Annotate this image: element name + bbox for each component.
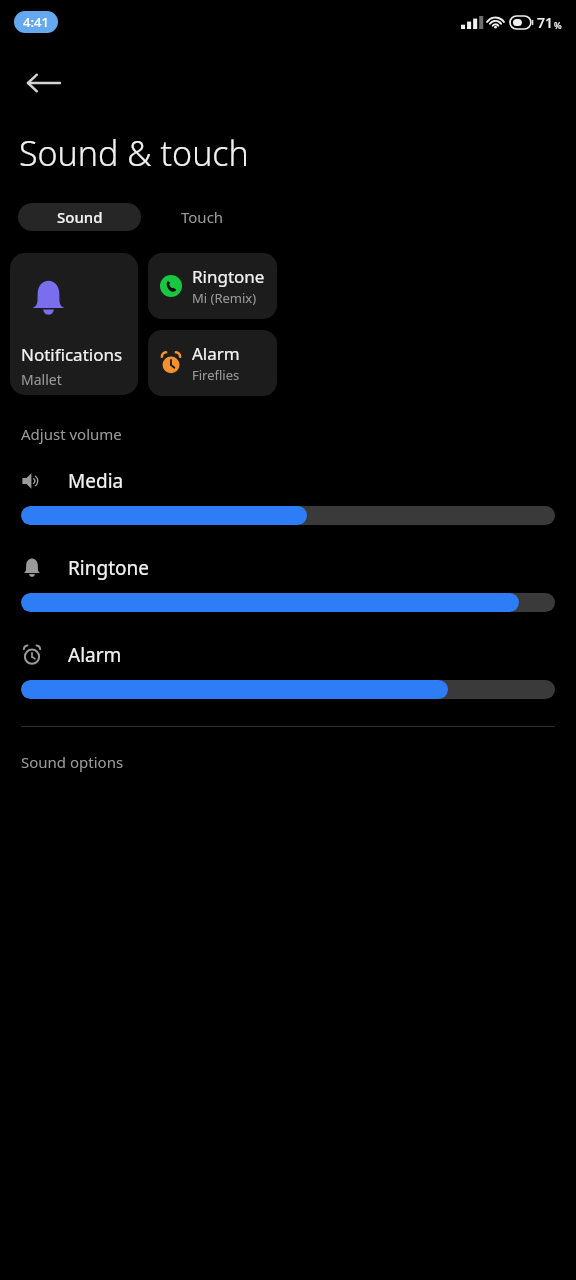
button[interactable]: Alarm volume: [21, 680, 555, 699]
staticText: 71: [537, 13, 554, 32]
staticText: Media: [68, 468, 124, 494]
staticText: Sound: [57, 207, 103, 227]
button[interactable]: Ringtone: [148, 253, 277, 319]
button[interactable]: Sound: [18, 203, 141, 231]
button[interactable]: Touch: [141, 203, 264, 231]
staticText: Fireflies: [192, 366, 240, 384]
button[interactable]: Ringtone volume: [21, 593, 555, 612]
button[interactable]: Back: [22, 62, 64, 104]
button[interactable]: Media volume: [21, 506, 555, 525]
button[interactable]: Alarm: [148, 330, 277, 396]
staticText: Touch: [181, 207, 224, 227]
staticText: Alarm: [68, 642, 122, 668]
staticText: Notifications: [21, 343, 123, 366]
staticText: %: [554, 19, 562, 31]
staticText: Ringtone: [192, 265, 265, 288]
staticText: 4:41: [23, 13, 49, 31]
staticText: Ringtone: [68, 555, 149, 581]
staticText: Adjust volume: [21, 424, 122, 444]
staticText: Sound & touch: [19, 130, 249, 176]
staticText: Alarm: [192, 342, 240, 365]
staticText: Sound options: [21, 752, 124, 772]
button[interactable]: Notifications: [10, 253, 138, 395]
staticText: Mi (Remix): [192, 289, 257, 307]
staticText: Mallet: [21, 370, 62, 389]
